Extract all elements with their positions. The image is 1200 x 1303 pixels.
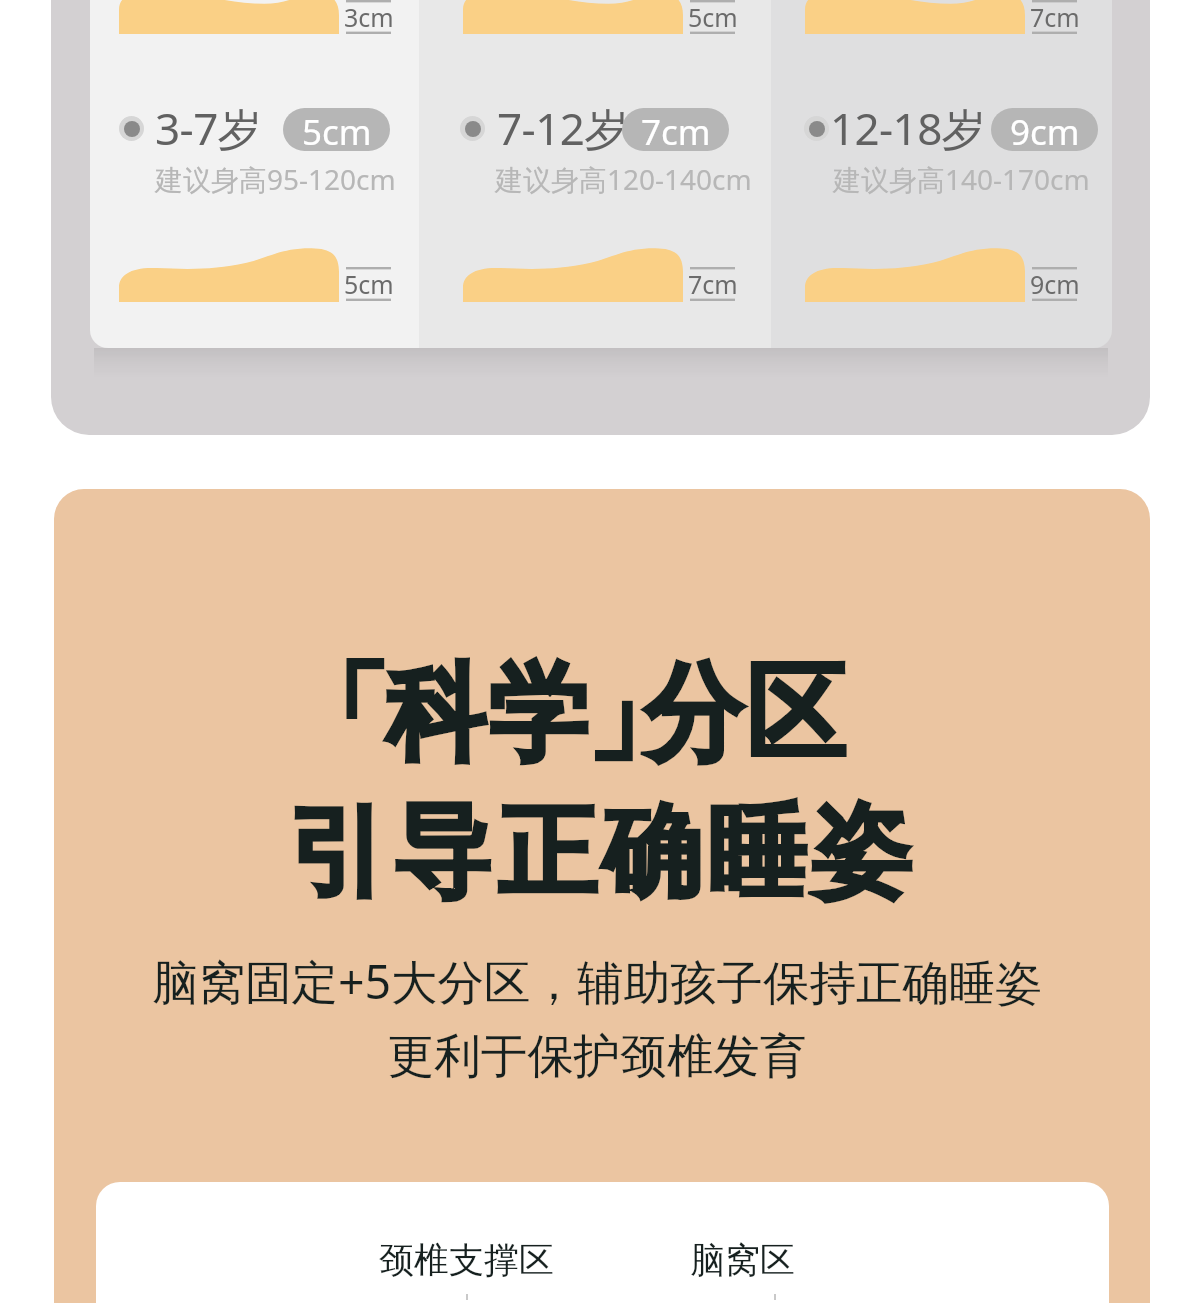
button[interactable]: 9cm [991, 108, 1098, 151]
staticText: 7cm [1030, 0, 1080, 34]
staticText: 建议身高120-140cm [495, 160, 752, 198]
staticText: 12-18岁 [830, 98, 986, 158]
other: Pillow side view [805, 246, 1025, 302]
staticText: 脑窝区 [690, 1238, 795, 1282]
staticText: 5cm [344, 267, 394, 301]
staticText: 5cm [302, 108, 372, 151]
staticText: 7cm [641, 108, 711, 151]
button[interactable]: 7-12岁 [460, 98, 628, 158]
staticText: 」 [587, 648, 686, 781]
staticText: 3-7岁 [155, 98, 262, 158]
staticText: 7-12岁 [497, 98, 628, 158]
staticText: 科学 [384, 648, 589, 781]
staticText: 「 [289, 648, 388, 781]
staticText: 脑窝固定+5大分区，辅助孩子保持正确睡姿 更利于保护颈椎发育 [54, 949, 1145, 1086]
other: Pillow top view [119, 0, 339, 34]
staticText: 分区 [642, 648, 847, 781]
staticText: 9cm [1030, 267, 1080, 301]
other: Pillow side view [463, 246, 683, 302]
staticText: 引导正确睡姿 [285, 790, 914, 915]
staticText: 建议身高140-170cm [833, 160, 1090, 198]
other: Pillow side view [119, 246, 339, 302]
staticText: 7cm [688, 267, 738, 301]
staticText: 5cm [688, 0, 738, 34]
button[interactable]: 7cm [622, 108, 729, 151]
staticText: 颈椎支撑区 [379, 1238, 554, 1282]
button[interactable]: 3-7岁 [119, 98, 262, 158]
other: Pillow top view [805, 0, 1025, 34]
staticText: 9cm [1010, 108, 1080, 151]
button[interactable]: 12-18岁 [804, 98, 986, 158]
other: Pillow top view [463, 0, 683, 34]
staticText: 3cm [344, 0, 394, 34]
staticText: 建议身高95-120cm [155, 160, 396, 198]
button[interactable]: 5cm [283, 108, 390, 151]
